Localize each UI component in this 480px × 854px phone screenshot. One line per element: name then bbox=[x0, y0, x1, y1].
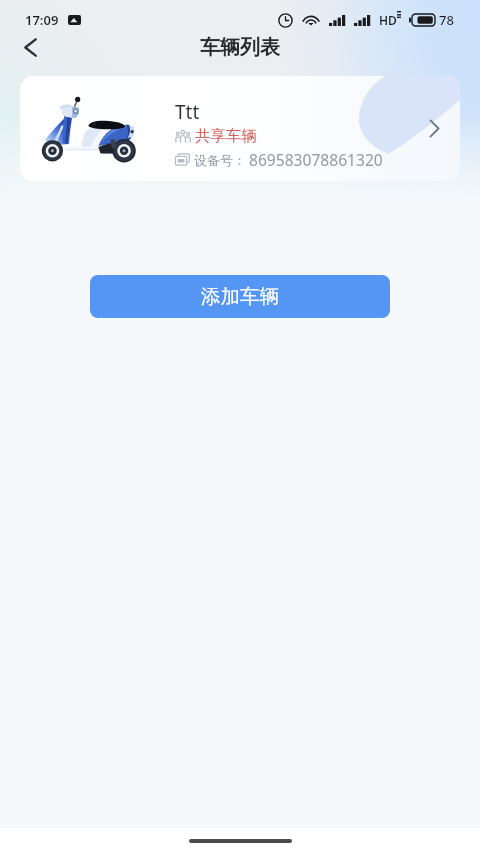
button[interactable]: Ttt bbox=[20, 76, 460, 181]
button[interactable]: 添加车辆 bbox=[90, 275, 390, 318]
staticText: 869583078861320 bbox=[249, 149, 383, 170]
staticText: Ttt bbox=[175, 99, 200, 125]
staticText: 共享车辆 bbox=[195, 126, 257, 146]
staticText: 车辆列表 bbox=[200, 35, 280, 60]
staticText: HD bbox=[379, 12, 397, 28]
staticText: 17:09 bbox=[25, 11, 59, 29]
staticText: 设备号： bbox=[194, 152, 246, 168]
staticText: 添加车辆 bbox=[201, 284, 279, 309]
button[interactable]: Back bbox=[12, 29, 48, 65]
staticText: 78 bbox=[439, 11, 454, 29]
